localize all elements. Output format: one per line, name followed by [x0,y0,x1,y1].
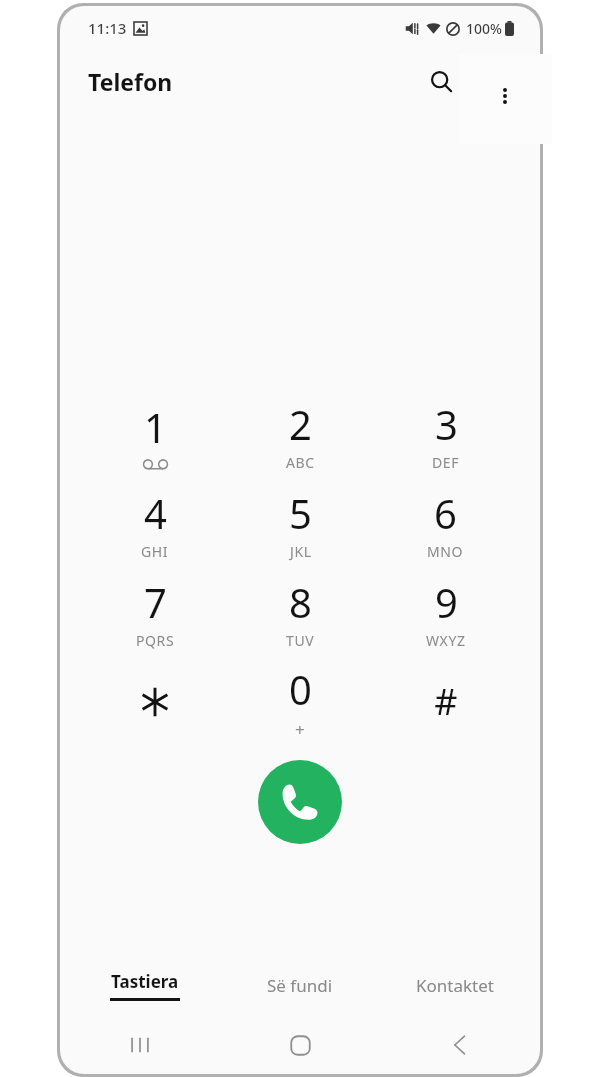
button[interactable]: 8 [228,568,373,657]
button[interactable]: 3 [373,390,518,479]
staticText: TUV [286,631,315,650]
staticText: 6 [434,486,457,540]
button[interactable]: # [373,657,518,746]
button[interactable]: 4 [82,479,228,568]
button[interactable]: Kontaktet [377,954,532,1016]
staticText: Telefon [88,66,173,97]
button[interactable]: 5 [228,479,373,568]
staticText: 4 [144,486,167,540]
staticText: # [434,677,458,726]
button[interactable]: 2 [228,390,373,479]
button[interactable] [82,657,228,746]
button[interactable]: 1 [82,390,228,479]
staticText: PQRS [136,631,175,650]
button[interactable]: More options [481,72,529,120]
staticText: 5 [289,486,312,540]
staticText: 3 [435,397,458,451]
staticText: WXYZ [426,631,466,650]
staticText: MNO [427,542,464,561]
button[interactable]: Home [220,1016,380,1074]
staticText: 7 [144,575,167,629]
button[interactable]: 7 [82,568,228,657]
staticText: 2 [289,397,312,451]
button[interactable]: Tastiera [68,954,222,1016]
button[interactable]: 0 [228,657,373,746]
staticText: 11:13 [88,18,127,38]
staticText: Kontaktet [416,974,494,997]
button[interactable]: 9 [373,568,518,657]
staticText: 100% [466,19,502,38]
button[interactable]: Recents [60,1016,220,1074]
button[interactable]: Call [258,760,342,844]
staticText: 9 [435,575,458,629]
staticText: ABC [286,453,315,472]
staticText: Së fundi [267,974,333,997]
button[interactable]: Së fundi [222,954,377,1016]
staticText: 0 [289,662,312,716]
staticText: 1 [144,400,167,454]
staticText: + [295,718,306,741]
button[interactable]: 6 [373,479,518,568]
button[interactable]: Back [380,1016,540,1074]
button[interactable]: Search [418,58,464,104]
staticText: DEF [432,453,460,472]
staticText: GHI [141,542,169,561]
staticText: 8 [289,575,312,629]
staticText: Tastiera [111,970,179,993]
staticText: JKL [290,542,312,561]
